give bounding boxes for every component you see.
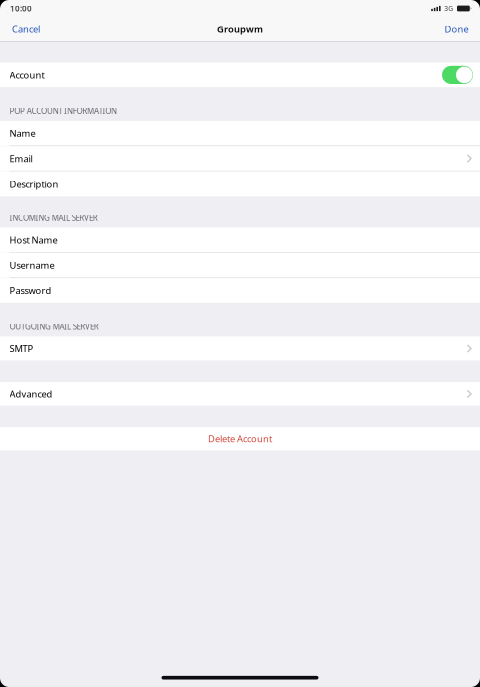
- button[interactable]: Name: [0, 121, 480, 145]
- staticText: Account: [9, 69, 44, 81]
- button[interactable]: Username: [0, 253, 480, 277]
- staticText: Name: [9, 127, 35, 139]
- staticText: INCOMING MAIL SERVER: [9, 212, 98, 223]
- staticText: Delete Account: [208, 433, 272, 445]
- staticText: OUTGOING MAIL SERVER: [9, 321, 99, 332]
- staticText: 3G: [444, 4, 453, 13]
- button[interactable]: Email: [0, 146, 480, 171]
- button[interactable]: Cancel: [12, 23, 40, 35]
- staticText: 10:00: [10, 3, 32, 14]
- staticText: Groupwm: [217, 23, 263, 35]
- staticText: Email: [9, 152, 32, 165]
- button[interactable]: Description: [0, 172, 480, 196]
- staticText: Cancel: [12, 23, 40, 35]
- staticText: Advanced: [9, 388, 52, 400]
- button[interactable]: Host Name: [0, 227, 480, 252]
- staticText: Description: [9, 178, 58, 190]
- button[interactable]: Account: [0, 63, 480, 87]
- button[interactable]: SMTP: [0, 336, 480, 361]
- button[interactable]: Done: [444, 23, 468, 35]
- staticText: POP ACCOUNT INFORMATION: [9, 106, 117, 116]
- staticText: Username: [9, 259, 54, 271]
- button[interactable]: Advanced: [0, 382, 480, 406]
- staticText: Host Name: [9, 234, 57, 246]
- staticText: SMTP: [9, 342, 33, 355]
- button[interactable]: Delete Account: [0, 427, 480, 450]
- staticText: Done: [444, 23, 468, 35]
- button[interactable]: Password: [0, 278, 480, 303]
- staticText: Password: [9, 284, 51, 297]
